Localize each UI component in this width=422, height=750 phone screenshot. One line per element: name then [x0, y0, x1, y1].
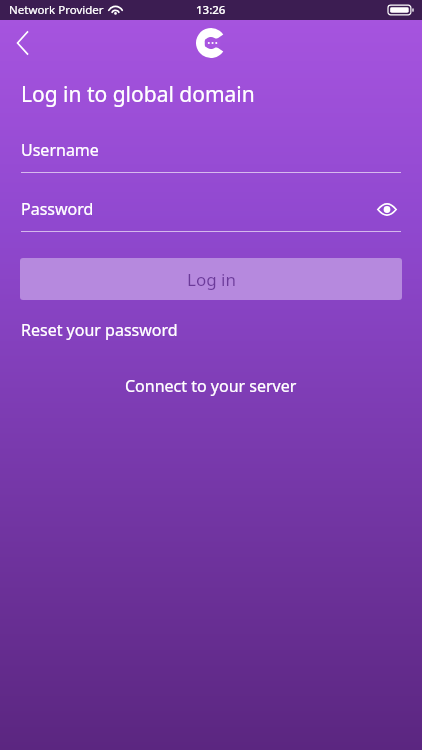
button[interactable]: Log in: [20, 258, 402, 300]
button[interactable]: Show password: [373, 195, 401, 223]
staticText: Username: [21, 139, 99, 161]
staticText: Log in: [187, 268, 236, 291]
button[interactable]: Back: [0, 20, 46, 66]
button[interactable]: Reset your password: [21, 316, 178, 344]
staticText: Log in to global domain: [21, 80, 255, 109]
staticText: 13:26: [196, 2, 226, 18]
staticText: Network Provider: [9, 2, 104, 18]
staticText: Reset your password: [21, 319, 178, 341]
button[interactable]: Username: [21, 136, 401, 173]
staticText: Password: [21, 198, 94, 220]
button[interactable]: Connect to your server: [117, 371, 305, 401]
staticText: Connect to your server: [125, 375, 297, 397]
button[interactable]: Password: [21, 195, 401, 232]
